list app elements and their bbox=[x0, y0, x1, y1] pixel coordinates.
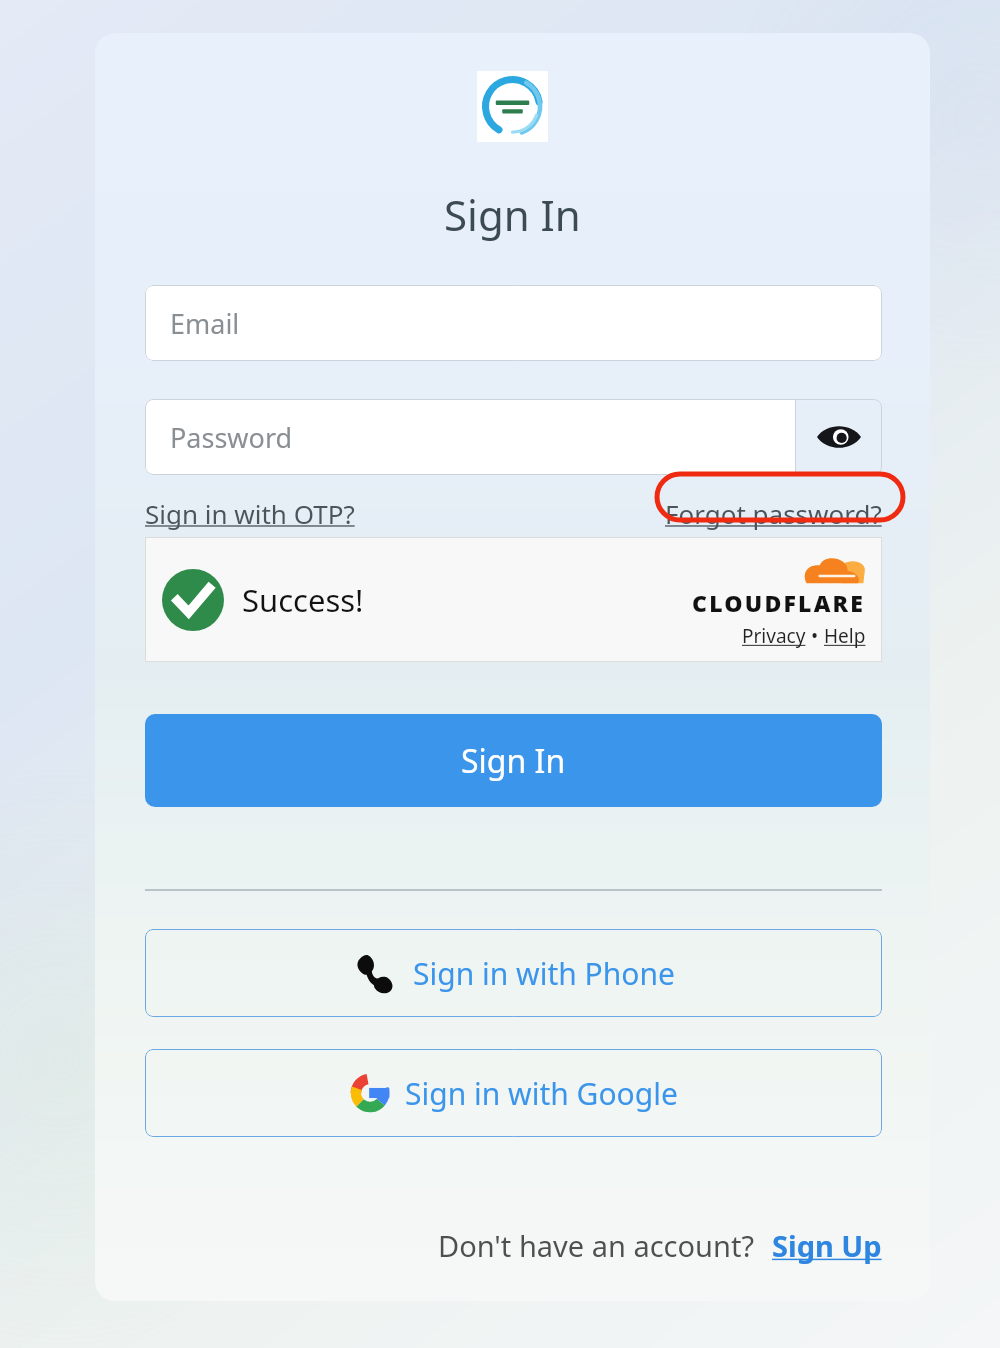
button[interactable]: Privacy bbox=[742, 623, 806, 649]
staticText: Sign in with Google bbox=[405, 1073, 678, 1114]
staticText: Privacy bbox=[742, 623, 806, 649]
staticText: Sign In bbox=[461, 739, 566, 783]
button[interactable]: Sign Up bbox=[772, 1226, 882, 1265]
staticText: Don't have an account? bbox=[438, 1226, 754, 1265]
staticText: Help bbox=[824, 623, 866, 649]
button[interactable]: Password bbox=[145, 399, 796, 475]
staticText: Sign in with Phone bbox=[413, 953, 675, 994]
staticText: Sign Up bbox=[772, 1226, 882, 1265]
staticText: Email bbox=[170, 305, 240, 342]
button[interactable]: Sign In bbox=[145, 714, 882, 807]
button[interactable]: Show password bbox=[796, 399, 882, 475]
staticText: • bbox=[806, 623, 824, 649]
button[interactable]: Email bbox=[145, 285, 882, 361]
button[interactable]: Sign in with Phone bbox=[145, 929, 882, 1017]
staticText: CLOUDFLARE bbox=[692, 587, 866, 618]
staticText: Sign In bbox=[444, 186, 581, 243]
button[interactable]: Forgot password? bbox=[665, 496, 882, 531]
staticText: Sign in with OTP? bbox=[145, 496, 355, 531]
staticText: Forgot password? bbox=[665, 496, 882, 531]
staticText: Success! bbox=[242, 579, 364, 621]
button[interactable]: Sign in with OTP? bbox=[145, 496, 355, 531]
staticText: Password bbox=[170, 419, 293, 456]
button[interactable]: Help bbox=[824, 623, 866, 649]
button[interactable]: Sign in with Google bbox=[145, 1049, 882, 1137]
